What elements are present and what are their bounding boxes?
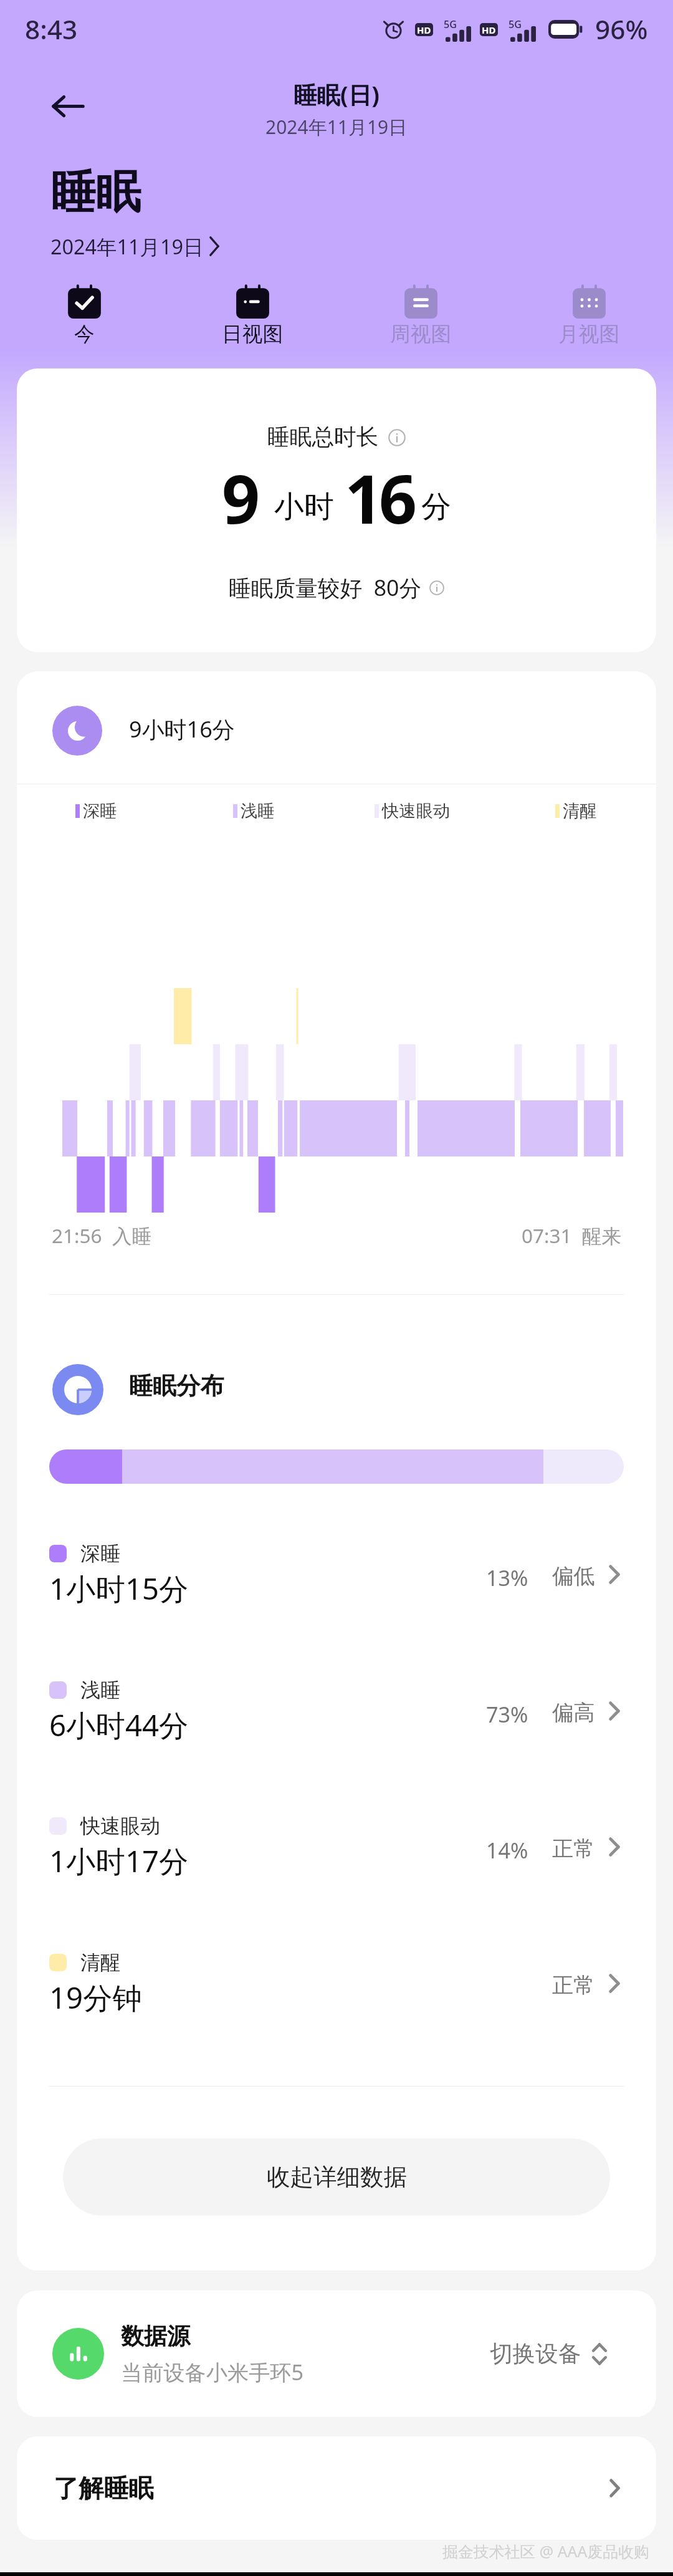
staticText: 5G xyxy=(444,17,457,31)
button[interactable]: 日视图 xyxy=(168,284,336,347)
staticText: 19分钟 xyxy=(49,1977,142,2017)
staticText: 睡眠分布 xyxy=(129,1371,224,1401)
staticText: 浅睡 xyxy=(80,1678,121,1703)
button[interactable]: 2024年11月19日 xyxy=(50,233,219,260)
staticText: 睡眠总时长 xyxy=(267,423,379,451)
staticText: 数据源 xyxy=(121,2322,190,2350)
staticText: 9 xyxy=(222,453,260,543)
staticText: 掘金技术社区 @ AAA废品收购 xyxy=(442,2540,649,2562)
staticText: 分 xyxy=(421,488,451,526)
staticText: 6小时44分 xyxy=(49,1704,189,1745)
staticText: 当前设备小米手环5 xyxy=(121,2357,304,2386)
staticText: 睡眠质量较好 80分 xyxy=(229,572,422,603)
staticText: 73% xyxy=(486,1699,528,1729)
staticText: 小时 xyxy=(274,488,334,526)
staticText: 2024年11月19日 xyxy=(265,114,408,140)
staticText: 96% xyxy=(595,11,648,47)
staticText: 2024年11月19日 xyxy=(50,233,204,260)
button[interactable]: 浅睡 xyxy=(17,1666,656,1760)
button[interactable]: 数据源 xyxy=(17,2290,656,2417)
staticText: 8:43 xyxy=(25,11,78,47)
staticText: 快速眼动 xyxy=(80,1814,161,1838)
staticText: 1小时17分 xyxy=(49,1840,189,1881)
staticText: 睡眠 xyxy=(50,164,141,221)
staticText: 浅睡 xyxy=(241,800,275,822)
button[interactable]: Back xyxy=(48,86,88,126)
button[interactable]: 今 xyxy=(0,284,168,347)
staticText: 切换设备 xyxy=(490,2340,581,2368)
staticText: 了解睡眠 xyxy=(54,2473,154,2504)
staticText: 9小时16分 xyxy=(129,714,235,744)
staticText: 深睡 xyxy=(83,800,117,822)
staticText: 14% xyxy=(486,1835,528,1865)
staticText: 今 xyxy=(74,322,95,347)
staticText: 21:56 入睡 xyxy=(52,1222,151,1249)
staticText: 正常 xyxy=(552,1972,595,1999)
staticText: 正常 xyxy=(552,1835,595,1862)
staticText: 日视图 xyxy=(222,322,284,347)
staticText: 睡眠(日) xyxy=(294,79,379,110)
staticText: 偏高 xyxy=(552,1699,595,1726)
staticText: 5G xyxy=(508,17,522,31)
staticText: 清醒 xyxy=(563,800,597,822)
staticText: HD xyxy=(417,24,431,36)
button[interactable]: 快速眼动 xyxy=(17,1802,656,1896)
staticText: 周视图 xyxy=(390,322,452,347)
staticText: 07:31 醒来 xyxy=(522,1222,621,1249)
staticText: HD xyxy=(482,24,496,36)
button[interactable]: 收起详细数据 xyxy=(63,2138,610,2216)
button[interactable]: 周视图 xyxy=(336,284,505,347)
button[interactable]: 了解睡眠 xyxy=(17,2436,656,2540)
button[interactable]: 清醒 xyxy=(17,1939,656,2032)
staticText: 月视图 xyxy=(558,322,620,347)
staticText: 快速眼动 xyxy=(382,800,451,822)
staticText: 1小时15分 xyxy=(49,1568,189,1608)
staticText: 偏低 xyxy=(552,1563,595,1590)
staticText: 13% xyxy=(486,1563,528,1592)
staticText: 收起详细数据 xyxy=(267,2163,407,2192)
button[interactable]: 月视图 xyxy=(505,284,673,347)
staticText: 16 xyxy=(345,453,414,543)
staticText: 清醒 xyxy=(80,1950,121,1975)
staticText: 深睡 xyxy=(80,1541,121,1566)
button[interactable]: 深睡 xyxy=(17,1530,656,1623)
